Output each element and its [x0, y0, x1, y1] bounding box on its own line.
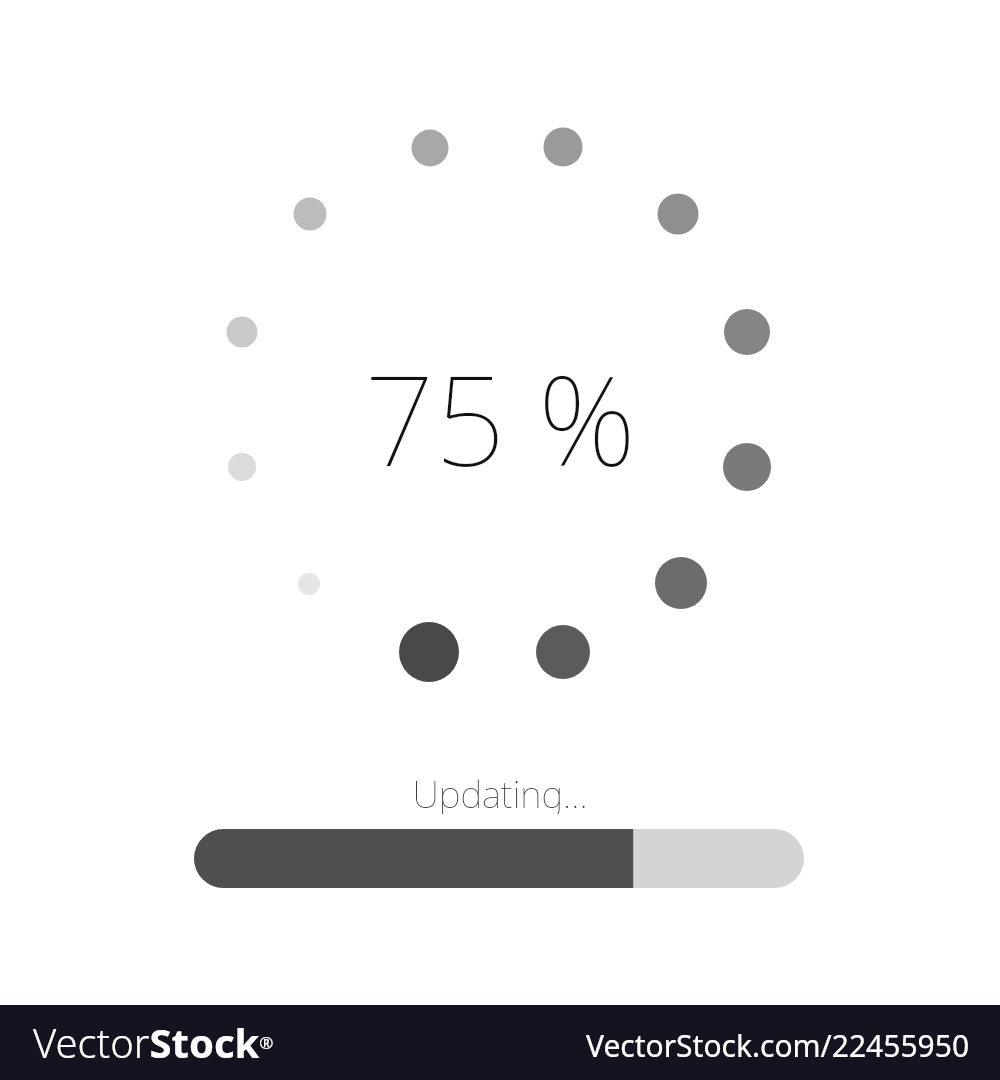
other: Loading spinner	[0, 0, 1000, 1080]
staticText: VectorStock.com/22455950	[586, 1025, 970, 1066]
staticText: 75 %	[364, 333, 636, 473]
staticText: Updating...	[412, 768, 588, 814]
button[interactable]: Update progress 75 percent	[194, 829, 804, 888]
staticText: VectorStock®	[33, 1015, 274, 1069]
